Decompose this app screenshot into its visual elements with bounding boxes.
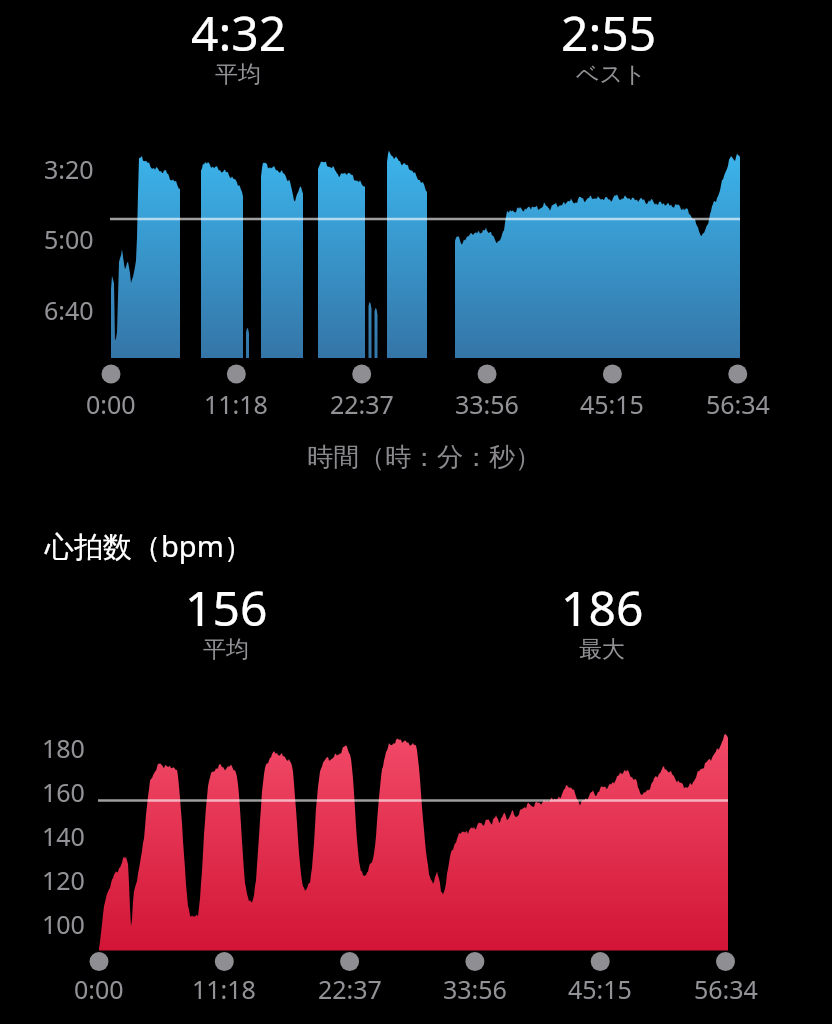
staticText: 56:34 — [694, 972, 758, 1006]
staticText: 5:00 — [44, 222, 94, 256]
staticText: 180 — [42, 731, 85, 765]
button[interactable]: 156 — [66, 575, 386, 639]
staticText: 120 — [42, 863, 85, 897]
staticText: 平均 — [215, 60, 261, 89]
staticText: 4:32 — [191, 0, 287, 64]
staticText: 2:55 — [561, 0, 657, 64]
staticText: 186 — [561, 575, 644, 639]
staticText: 45:15 — [580, 387, 644, 421]
staticText: 33:56 — [443, 972, 507, 1006]
staticText: 56:34 — [706, 387, 770, 421]
staticText: 時間（時：分：秒） — [307, 441, 541, 474]
staticText: 22:37 — [318, 972, 382, 1006]
staticText: 11:18 — [192, 972, 256, 1006]
staticText: 心拍数（bpm） — [45, 526, 253, 566]
staticText: 3:20 — [44, 152, 94, 186]
staticText: 160 — [42, 775, 85, 809]
staticText: 100 — [42, 907, 85, 941]
staticText: 最大 — [579, 635, 625, 664]
staticText: 6:40 — [44, 293, 94, 327]
staticText: 140 — [42, 819, 85, 853]
staticText: 45:15 — [568, 972, 632, 1006]
button[interactable]: 186 — [442, 575, 762, 639]
staticText: 33:56 — [455, 387, 519, 421]
staticText: 11:18 — [204, 387, 268, 421]
staticText: 22:37 — [330, 387, 394, 421]
staticText: 平均 — [203, 635, 249, 664]
button[interactable]: 心拍数（bpm） — [45, 526, 253, 566]
staticText: 156 — [185, 575, 268, 639]
button[interactable]: 2:55 — [449, 0, 769, 64]
button[interactable]: 4:32 — [79, 0, 399, 64]
staticText: 0:00 — [74, 972, 124, 1006]
staticText: ベスト — [576, 60, 647, 89]
staticText: 0:00 — [86, 387, 136, 421]
